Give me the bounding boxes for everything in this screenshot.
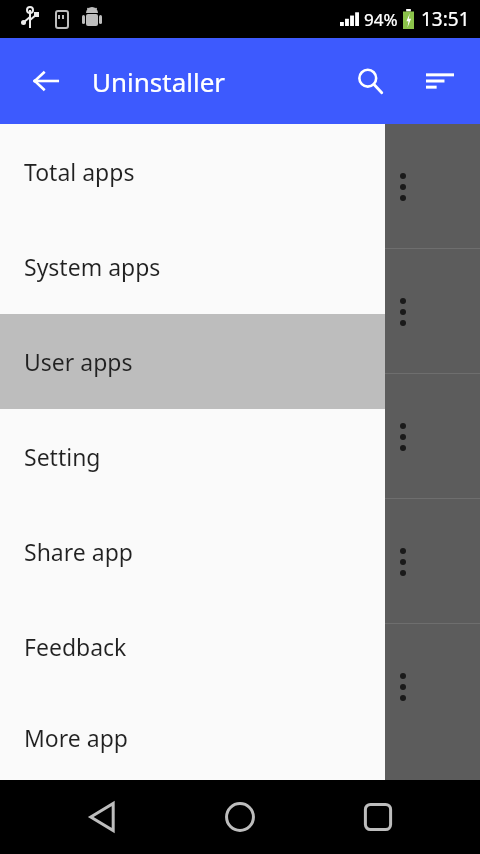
button[interactable]: Sort xyxy=(414,55,466,107)
button[interactable]: Search xyxy=(344,55,396,107)
button[interactable]: More options xyxy=(386,663,420,711)
button[interactable]: More options xyxy=(0,624,480,749)
button[interactable]: Setting xyxy=(0,409,385,504)
button[interactable]: Feedback xyxy=(0,599,385,694)
button[interactable]: More app xyxy=(0,694,385,780)
button[interactable]: More options xyxy=(0,374,480,499)
staticText: User apps xyxy=(24,346,133,377)
staticText: System apps xyxy=(24,251,161,282)
staticText: 94% xyxy=(364,8,398,31)
staticText: Setting xyxy=(24,441,101,472)
button[interactable]: Share app xyxy=(0,504,385,599)
button[interactable]: Recent apps xyxy=(343,782,413,852)
button[interactable]: Back xyxy=(20,55,72,107)
staticText: Uninstaller xyxy=(92,64,226,99)
staticText: Feedback xyxy=(24,631,127,662)
button[interactable]: Home xyxy=(205,782,275,852)
button[interactable]: More options xyxy=(0,249,480,374)
button[interactable]: More options xyxy=(386,538,420,586)
button[interactable]: More options xyxy=(0,499,480,624)
button[interactable]: System apps xyxy=(0,219,385,314)
button[interactable]: More options xyxy=(386,413,420,461)
staticText: 13:51 xyxy=(421,6,470,32)
button[interactable]: Total apps xyxy=(0,124,385,219)
button[interactable]: User apps xyxy=(0,314,385,409)
button[interactable]: More options xyxy=(386,163,420,211)
staticText: More app xyxy=(24,722,128,753)
button[interactable]: More options xyxy=(386,288,420,336)
button[interactable]: Back xyxy=(68,782,138,852)
staticText: Total apps xyxy=(24,156,135,187)
button[interactable]: More options xyxy=(0,124,480,249)
staticText: Share app xyxy=(24,536,133,567)
